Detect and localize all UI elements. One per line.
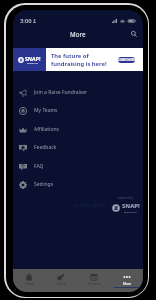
staticText: Feedback — [34, 144, 57, 151]
button[interactable]: Search — [128, 28, 140, 40]
staticText: 3:00 — [20, 17, 32, 25]
button[interactable]: Affiliations — [13, 120, 143, 139]
button[interactable]: My Teams — [13, 101, 143, 120]
staticText: powered by — [118, 196, 134, 200]
staticText: SNAP! — [25, 55, 41, 62]
staticText: MOBILE — [124, 210, 138, 213]
staticText: Settings — [34, 181, 54, 188]
staticText: FAQ — [34, 163, 44, 170]
staticText: SNAP! — [122, 202, 140, 210]
button[interactable]: More — [110, 269, 143, 292]
button[interactable]: Schedule — [77, 269, 110, 292]
staticText: LEARN MORE — [118, 58, 135, 62]
button[interactable]: Home — [13, 269, 45, 292]
button[interactable]: Settings — [13, 175, 143, 194]
staticText: Schedule — [87, 282, 101, 286]
staticText: Join a Raise Fundraiser — [34, 89, 88, 96]
button[interactable]: Join a Raise Fundraiser — [13, 83, 143, 102]
staticText: More — [70, 30, 86, 38]
staticText: The future of — [51, 52, 89, 60]
staticText: v7.2.17.2 (4047) — [74, 203, 105, 209]
staticText: MOBILE — [27, 62, 39, 65]
button[interactable]: SNAP! — [13, 48, 143, 71]
staticText: fundraising is here! — [51, 60, 107, 68]
button[interactable]: Coach — [45, 269, 77, 292]
button[interactable]: FAQ — [13, 157, 143, 176]
button[interactable]: Feedback — [13, 138, 143, 157]
staticText: More — [123, 282, 131, 286]
button[interactable]: LEARN MORE — [118, 57, 135, 63]
staticText: Affiliations — [34, 126, 59, 133]
staticText: My Teams — [34, 107, 58, 114]
staticText: Coach — [56, 282, 66, 286]
staticText: Home — [24, 282, 34, 286]
